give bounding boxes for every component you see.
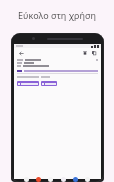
button[interactable] bbox=[17, 70, 98, 72]
button[interactable] bbox=[41, 81, 57, 86]
button[interactable] bbox=[17, 59, 98, 61]
button[interactable] bbox=[17, 65, 98, 67]
button[interactable] bbox=[17, 62, 98, 64]
button[interactable] bbox=[17, 81, 39, 86]
staticText: Εύκολο στη χρήση bbox=[18, 9, 96, 21]
button[interactable]: Copy bbox=[90, 49, 98, 57]
button[interactable]: Back bbox=[17, 49, 25, 57]
button[interactable]: Delete bbox=[81, 49, 89, 57]
